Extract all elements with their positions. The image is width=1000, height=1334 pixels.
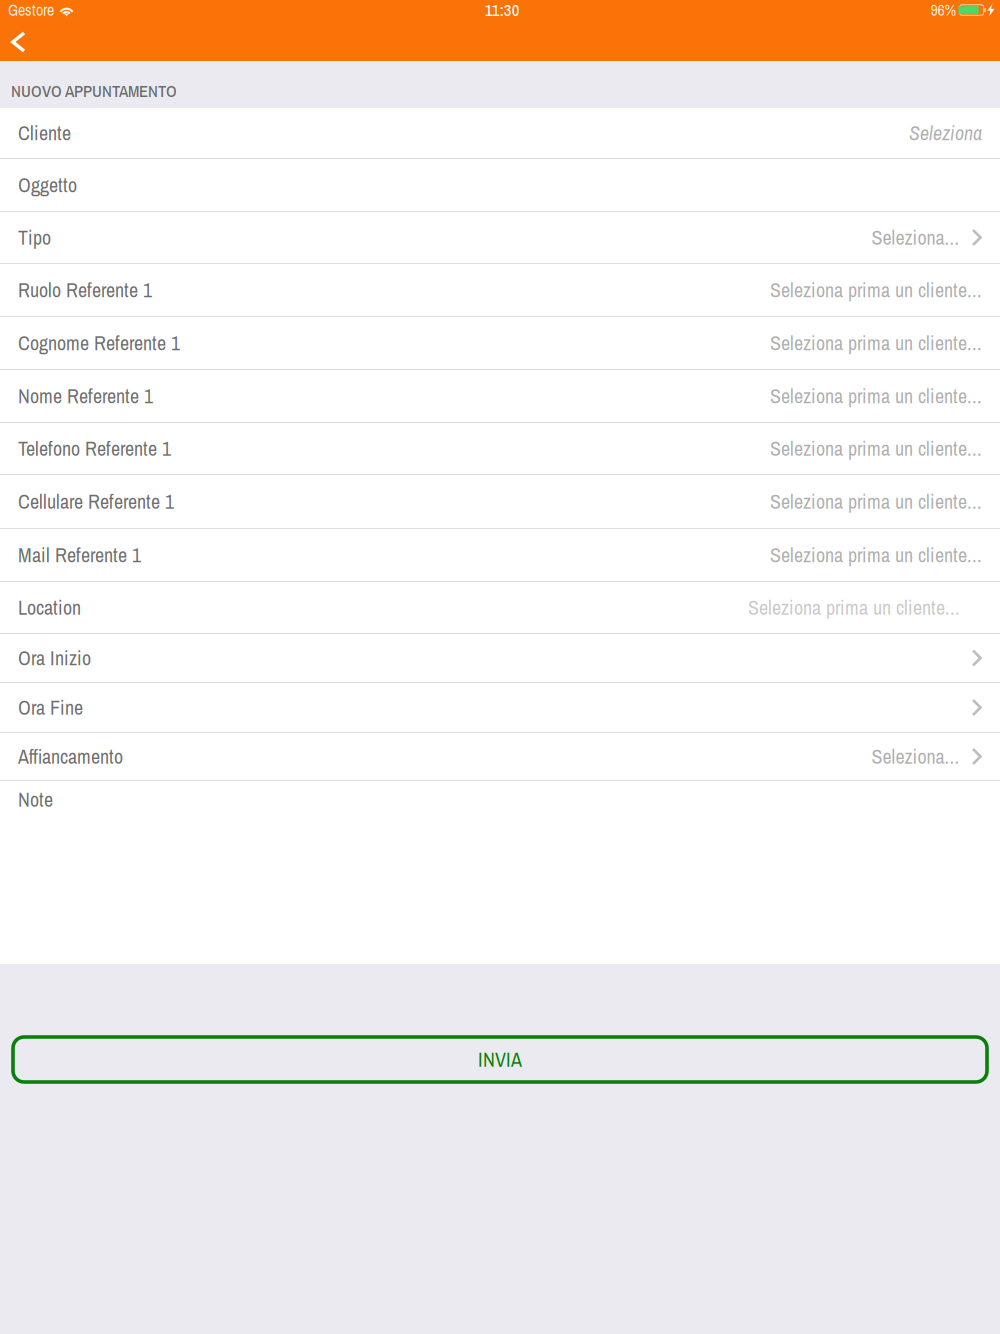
staticText: INVIA [478,1046,522,1073]
staticText: Location [18,594,81,621]
staticText: Cliente [18,119,71,146]
staticText: Telefono Referente 1 [18,435,171,462]
button[interactable]: Nome Referente 1 [0,370,1000,423]
button[interactable]: Location [0,582,1000,634]
staticText: Ora Inizio [18,644,91,671]
button[interactable]: Mail Referente 1 [0,529,1000,582]
staticText: Ruolo Referente 1 [18,276,152,303]
staticText: Mail Referente 1 [18,541,141,568]
staticText: Cellulare Referente 1 [18,488,174,515]
button[interactable]: Cliente [0,108,1000,159]
staticText: Tipo [18,224,51,251]
staticText: Seleziona prima un cliente... [748,594,960,621]
button[interactable]: Ora Fine [0,683,1000,733]
button[interactable]: Oggetto [0,159,1000,212]
staticText: Seleziona prima un cliente... [770,329,982,356]
staticText: Seleziona prima un cliente... [770,276,982,303]
button[interactable]: Back [0,23,60,61]
staticText: Ora Fine [18,694,83,721]
staticText: Affiancamento [18,743,123,770]
button[interactable]: INVIA [0,1037,1000,1082]
button[interactable]: Ora Inizio [0,634,1000,683]
staticText: NUOVO APPUNTAMENTO [11,80,177,102]
button[interactable]: Ruolo Referente 1 [0,264,1000,317]
staticText: Seleziona... [871,224,959,251]
staticText: Note [18,786,53,813]
staticText: Seleziona... [871,743,959,770]
staticText: Oggetto [18,171,77,198]
staticText: Seleziona prima un cliente... [770,435,982,462]
staticText: 96% [931,0,957,21]
button[interactable]: Note [0,781,1000,964]
staticText: Gestore [8,0,54,21]
staticText: 11:30 [485,0,520,21]
staticText: Seleziona prima un cliente... [770,541,982,568]
staticText: Seleziona prima un cliente... [770,488,982,515]
button[interactable]: Cognome Referente 1 [0,317,1000,370]
button[interactable]: Affiancamento [0,733,1000,781]
button[interactable]: Telefono Referente 1 [0,423,1000,475]
staticText: Seleziona [909,119,982,146]
staticText: Seleziona prima un cliente... [770,382,982,409]
staticText: Cognome Referente 1 [18,329,180,356]
button[interactable]: Cellulare Referente 1 [0,475,1000,529]
button[interactable]: Tipo [0,212,1000,264]
staticText: Nome Referente 1 [18,382,153,409]
